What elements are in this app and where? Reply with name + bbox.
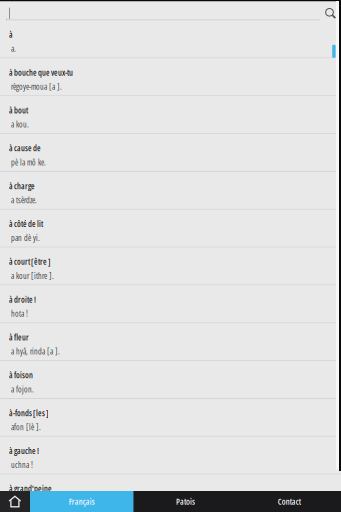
staticText: a fojon. bbox=[11, 384, 34, 395]
button[interactable]: à grand'peine bbox=[0, 475, 341, 511]
staticText: à droite ! bbox=[9, 294, 36, 305]
staticText: Contact bbox=[278, 496, 301, 507]
staticText: uchna ! bbox=[11, 459, 33, 470]
button[interactable]: à droite ! bbox=[0, 285, 341, 322]
staticText: pan dè yi. bbox=[11, 232, 40, 243]
staticText: à grand'peine bbox=[9, 483, 52, 494]
staticText: à charge bbox=[9, 180, 35, 192]
staticText: a hyâ, rinda [a ]. bbox=[11, 346, 60, 357]
staticText: a kour [ithre ]. bbox=[11, 270, 54, 281]
button[interactable]: à bbox=[0, 21, 341, 57]
staticText: à gauche ! bbox=[9, 445, 39, 456]
staticText: a tsèrdze. bbox=[11, 194, 37, 206]
button[interactable]: Home bbox=[0, 491, 30, 512]
button[interactable]: à bouche que veux-tu bbox=[0, 58, 341, 95]
staticText: à court [être ] bbox=[9, 256, 51, 267]
staticText: à foison bbox=[9, 370, 33, 381]
staticText: pè la mô ke. bbox=[11, 157, 46, 168]
staticText: a. bbox=[11, 43, 16, 54]
button[interactable]: Français bbox=[30, 491, 134, 512]
button[interactable]: à foison bbox=[0, 361, 341, 398]
staticText: règoye-moua [a ]. bbox=[11, 81, 62, 92]
staticText: à bout bbox=[9, 105, 28, 116]
button[interactable]: à charge bbox=[0, 172, 341, 209]
button[interactable]: à gauche ! bbox=[0, 437, 341, 474]
staticText: à bouche que veux-tu bbox=[9, 67, 73, 78]
staticText: Patois bbox=[176, 496, 195, 507]
staticText: a kou. bbox=[11, 119, 29, 130]
staticText: afon [lè ]. bbox=[11, 422, 41, 433]
staticText: Français bbox=[69, 496, 95, 507]
button[interactable]: à-fonds [les ] bbox=[0, 399, 341, 436]
button[interactable]: à court [être ] bbox=[0, 248, 341, 284]
staticText: à fleur bbox=[9, 332, 29, 343]
staticText: à cause de bbox=[9, 143, 41, 154]
staticText: hota ! bbox=[11, 308, 28, 319]
button[interactable]: à fleur bbox=[0, 323, 341, 360]
button[interactable]: Contact bbox=[237, 491, 341, 512]
staticText: à bbox=[9, 29, 13, 40]
button[interactable]: à cause de bbox=[0, 134, 341, 171]
staticText: a granta pan-na. bbox=[11, 497, 57, 508]
button[interactable]: à côté de lit bbox=[0, 210, 341, 247]
staticText: à côté de lit bbox=[9, 218, 43, 229]
button[interactable]: à bout bbox=[0, 96, 341, 133]
staticText: à-fonds [les ] bbox=[9, 407, 49, 419]
button[interactable]: Patois bbox=[134, 491, 237, 512]
